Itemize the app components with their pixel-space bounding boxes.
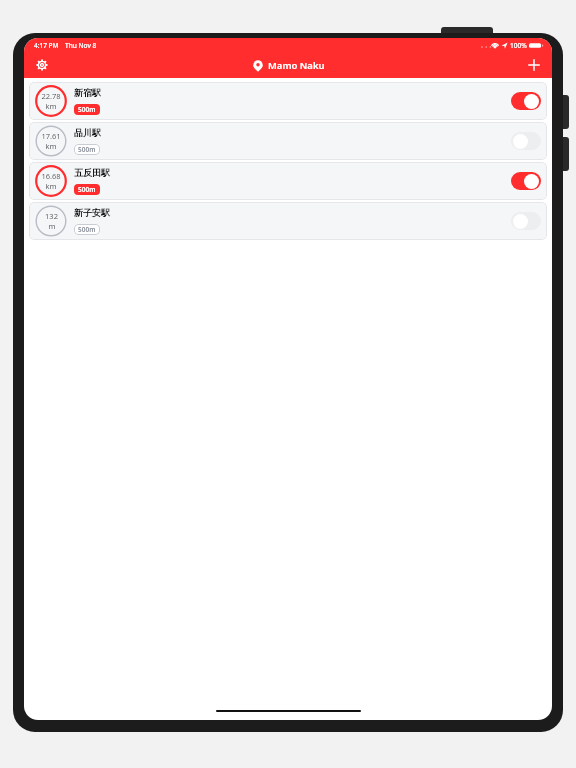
staticText: 新宿駅 <box>74 87 101 98</box>
staticText: Mamo Naku <box>268 59 325 72</box>
staticText: m <box>48 221 56 231</box>
button[interactable]: Toggle alarm for 新宿駅 <box>511 92 541 110</box>
button[interactable]: 132 <box>29 202 547 240</box>
staticText: 500m <box>78 145 96 154</box>
staticText: 500m <box>78 185 96 194</box>
staticText: Thu Nov 8 <box>65 41 97 50</box>
button[interactable]: 22.78 <box>29 82 547 120</box>
button[interactable]: 16.68 <box>29 162 547 200</box>
button[interactable]: Toggle alarm for 五反田駅 <box>511 172 541 190</box>
staticText: 16.68 <box>41 171 61 181</box>
staticText: 新子安駅 <box>74 207 110 218</box>
staticText: km <box>45 101 57 111</box>
staticText: km <box>45 141 57 151</box>
staticText: 4:17 PM <box>34 41 59 50</box>
button[interactable]: 17.61 <box>29 122 547 160</box>
staticText: 500m <box>78 105 96 114</box>
button[interactable]: Toggle alarm for 新子安駅 <box>511 212 541 230</box>
staticText: 22.78 <box>41 91 61 101</box>
button[interactable]: Add station <box>524 55 544 75</box>
staticText: 500m <box>78 225 96 234</box>
staticText: 100% <box>510 41 527 50</box>
staticText: 17.61 <box>41 131 61 141</box>
staticText: 132 <box>45 211 58 221</box>
button[interactable]: Toggle alarm for 品川駅 <box>511 132 541 150</box>
staticText: km <box>45 181 57 191</box>
staticText: 五反田駅 <box>74 167 110 178</box>
button[interactable]: Mamo Naku <box>252 59 325 72</box>
button[interactable]: Settings <box>32 55 52 75</box>
staticText: 品川駅 <box>74 127 101 138</box>
